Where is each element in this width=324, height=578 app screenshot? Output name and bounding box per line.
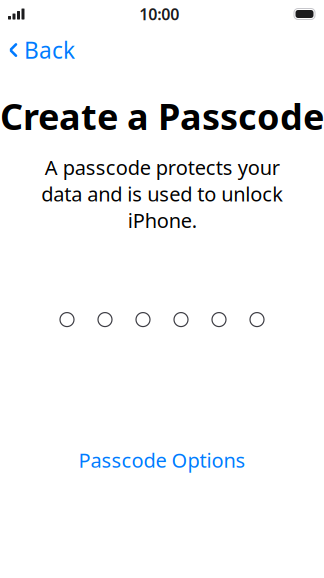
staticText: Create a Passcode <box>0 92 324 140</box>
button[interactable]: Back <box>0 30 83 70</box>
staticText: Back <box>24 35 75 65</box>
staticText: Passcode Options <box>78 447 245 473</box>
button[interactable]: Passcode Options <box>66 440 257 480</box>
staticText: A passcode protects your data and is use… <box>41 154 283 234</box>
staticText: 10:00 <box>139 3 179 25</box>
